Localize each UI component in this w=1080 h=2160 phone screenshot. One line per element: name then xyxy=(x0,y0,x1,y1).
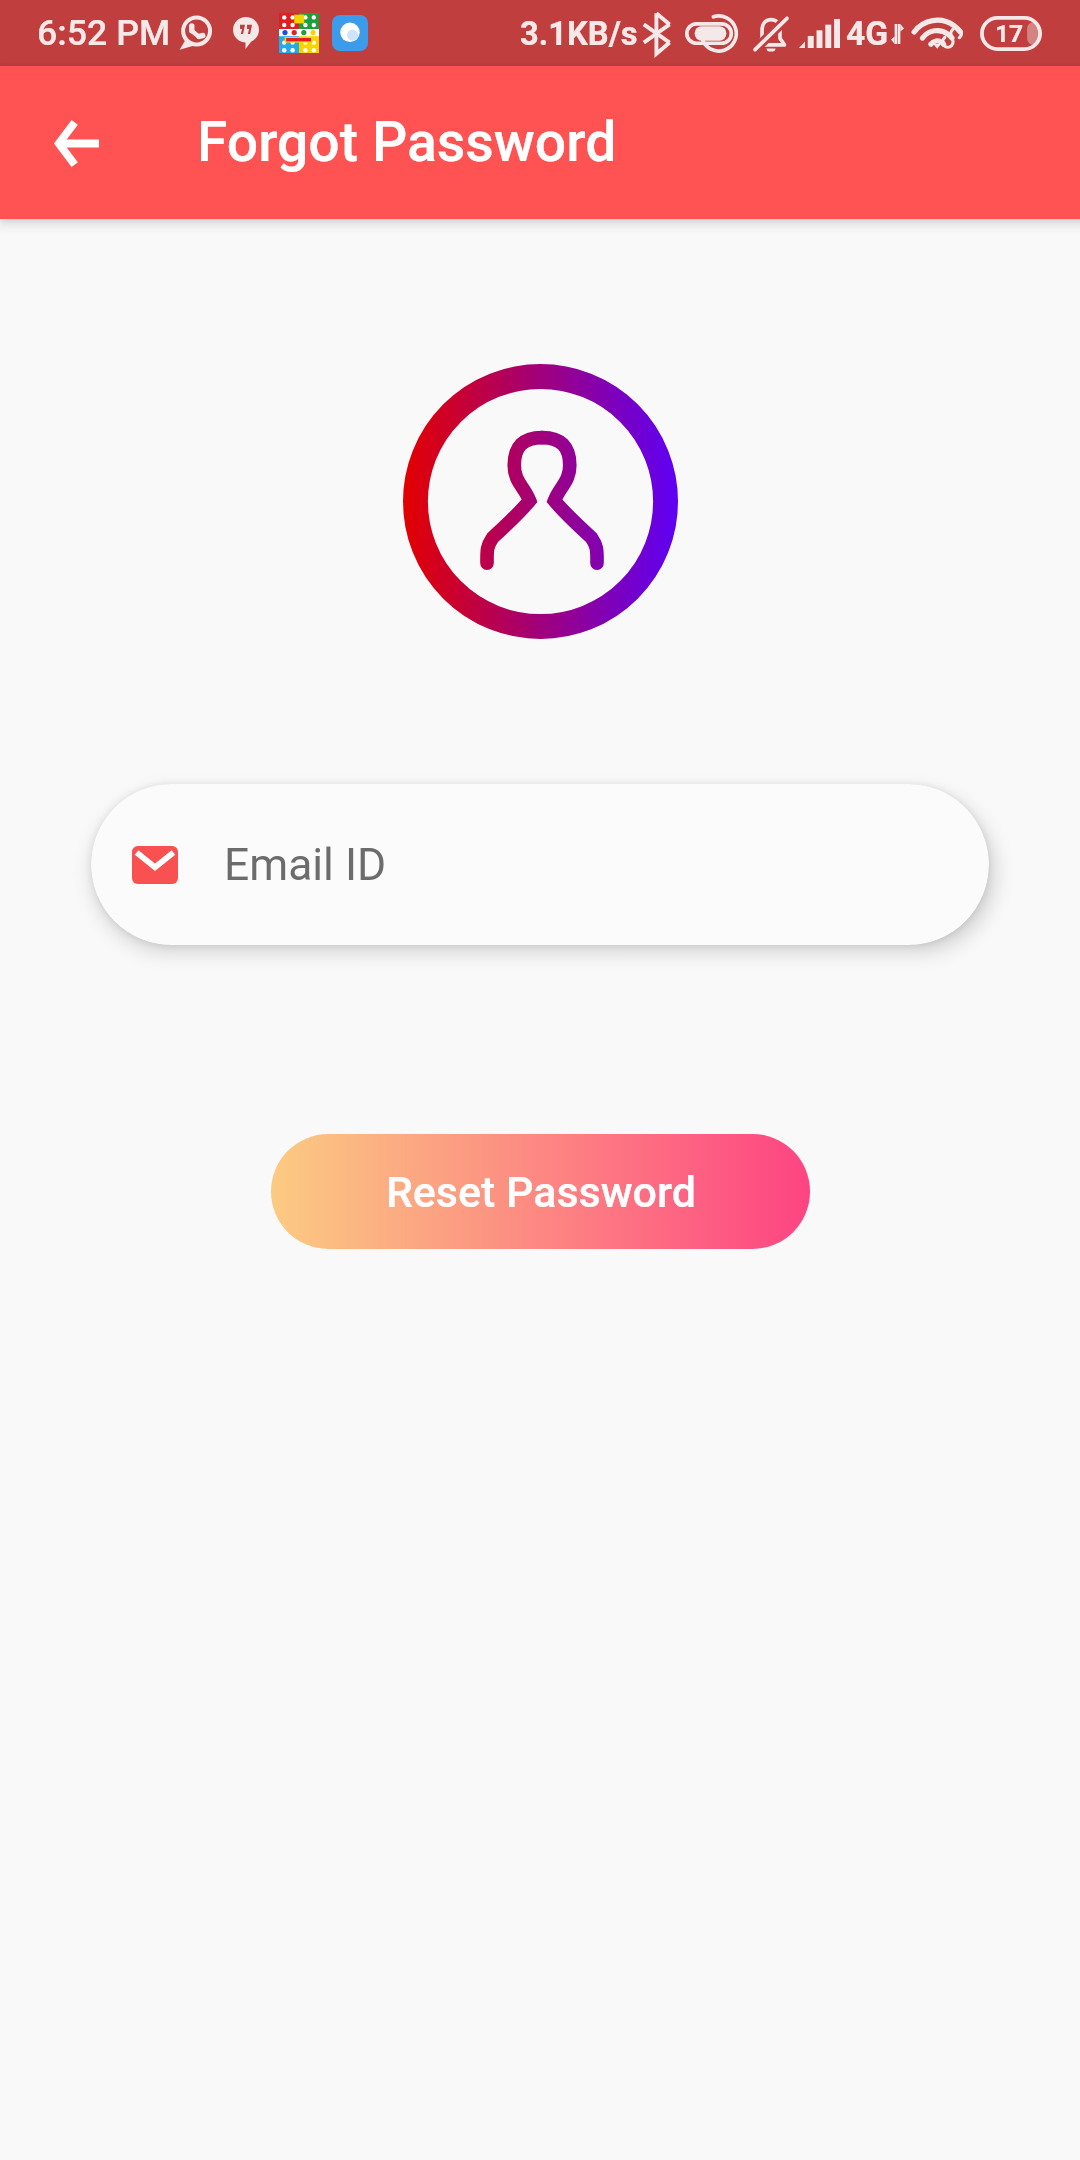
staticText: 6:52 PM xyxy=(37,12,171,54)
staticText: Forgot Password xyxy=(197,110,617,175)
staticText: Email ID xyxy=(224,839,387,891)
button[interactable]: Back xyxy=(16,83,136,203)
button[interactable]: Email ID xyxy=(91,784,989,945)
staticText: 4G xyxy=(846,14,889,53)
button[interactable]: Reset Password xyxy=(271,1134,810,1249)
staticText: Reset Password xyxy=(386,1167,696,1217)
staticText: 3.1KB/s xyxy=(520,15,638,53)
staticText: 17 xyxy=(995,19,1024,48)
